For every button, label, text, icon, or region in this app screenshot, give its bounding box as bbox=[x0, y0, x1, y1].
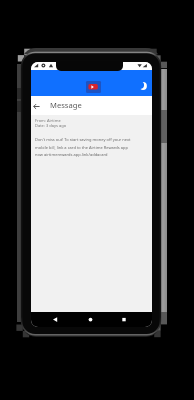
staticText: Message bbox=[50, 100, 82, 110]
staticText: Don't miss out! To start saving money of… bbox=[35, 137, 134, 157]
staticText: Date: 3 days ago bbox=[35, 123, 67, 128]
button[interactable]: Do not disturb bbox=[139, 82, 147, 90]
button[interactable]: Back bbox=[31, 101, 41, 111]
staticText: From: Airtime bbox=[35, 118, 61, 123]
